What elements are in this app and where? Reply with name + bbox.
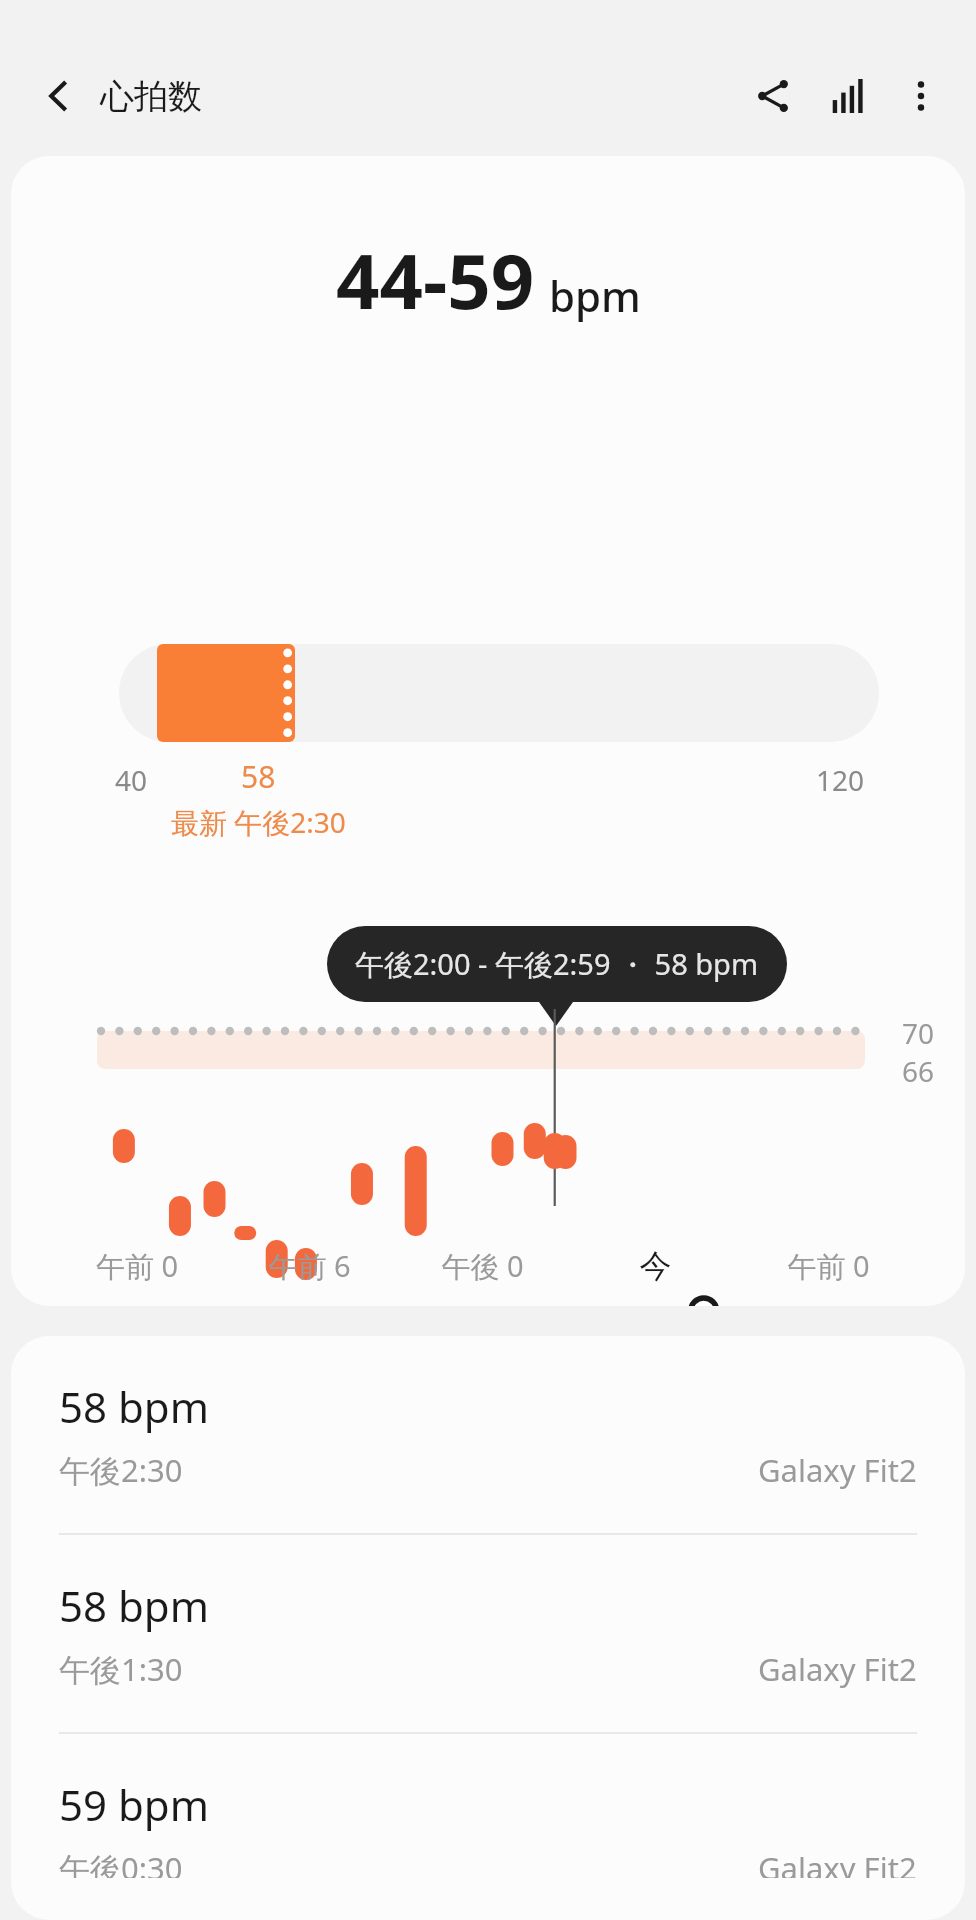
staticText: 最新 午後2:30 [171, 803, 346, 841]
button[interactable]: Share [736, 59, 810, 133]
staticText: 午前 6 [223, 1246, 396, 1286]
button[interactable]: 58 bpm [11, 1535, 965, 1732]
staticText: 今 [569, 1246, 742, 1286]
staticText: 心拍数 [100, 75, 202, 118]
button[interactable]: Back [30, 68, 86, 124]
staticText: 58 bpm [59, 1378, 209, 1435]
staticText: 午後 0 [396, 1246, 569, 1286]
button[interactable]: 59 bpm [11, 1734, 965, 1920]
staticText: 午後2:30 [59, 1449, 183, 1491]
staticText: 66 [902, 1052, 935, 1090]
button[interactable]: 58 bpm [11, 1336, 965, 1533]
staticText: Galaxy Fit2 [758, 1648, 917, 1690]
staticText: 59 bpm [59, 1776, 209, 1833]
staticText: 午後2:00 - 午後2:59 ・ 58 bpm [355, 944, 759, 984]
button[interactable]: More options [884, 59, 958, 133]
staticText: Galaxy Fit2 [758, 1847, 917, 1878]
staticText: 40 [115, 761, 148, 799]
staticText: bpm [549, 267, 641, 324]
staticText: Galaxy Fit2 [758, 1449, 917, 1491]
staticText: 午後0:30 [59, 1847, 183, 1878]
staticText: 58 [241, 756, 276, 797]
staticText: 午前 0 [742, 1246, 915, 1286]
staticText: 70 [902, 1014, 935, 1052]
staticText: 44-59 [336, 228, 535, 332]
button[interactable]: 44-59 [11, 156, 965, 1306]
button[interactable]: Chart [810, 59, 884, 133]
staticText: 120 [816, 761, 865, 799]
staticText: 午後1:30 [59, 1648, 183, 1690]
staticText: 午前 0 [51, 1246, 223, 1286]
staticText: 58 bpm [59, 1577, 209, 1634]
